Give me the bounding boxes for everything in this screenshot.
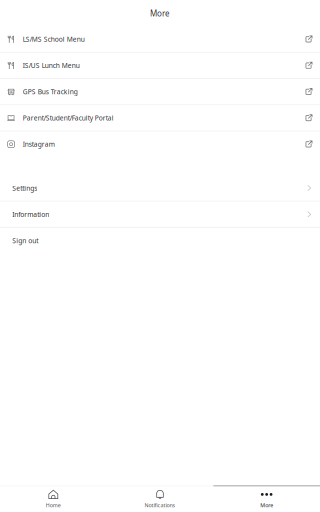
button[interactable]: LS/MS School Menu <box>0 27 320 53</box>
button[interactable]: More <box>213 486 320 512</box>
staticText: Parent/Student/Faculty Portal <box>23 113 114 122</box>
button[interactable]: IS/US Lunch Menu <box>0 53 320 79</box>
button[interactable]: Notifications <box>107 486 213 512</box>
button[interactable]: Settings <box>0 175 320 202</box>
button[interactable]: Instagram <box>0 132 320 158</box>
staticText: More <box>260 502 273 509</box>
button[interactable]: Sign out <box>0 228 320 254</box>
button[interactable]: Parent/Student/Faculty Portal <box>0 105 320 131</box>
staticText: LS/MS School Menu <box>23 35 85 44</box>
staticText: GPS Bus Tracking <box>23 87 78 96</box>
button[interactable]: Home <box>0 486 107 512</box>
button[interactable]: Information <box>0 202 320 228</box>
staticText: Sign out <box>12 236 38 245</box>
staticText: More <box>150 8 170 19</box>
staticText: Notifications <box>144 502 175 509</box>
staticText: Instagram <box>23 140 55 149</box>
staticText: Information <box>12 210 49 219</box>
button[interactable]: GPS Bus Tracking <box>0 79 320 105</box>
staticText: Home <box>46 502 61 509</box>
staticText: IS/US Lunch Menu <box>23 61 80 70</box>
staticText: Settings <box>12 184 37 192</box>
